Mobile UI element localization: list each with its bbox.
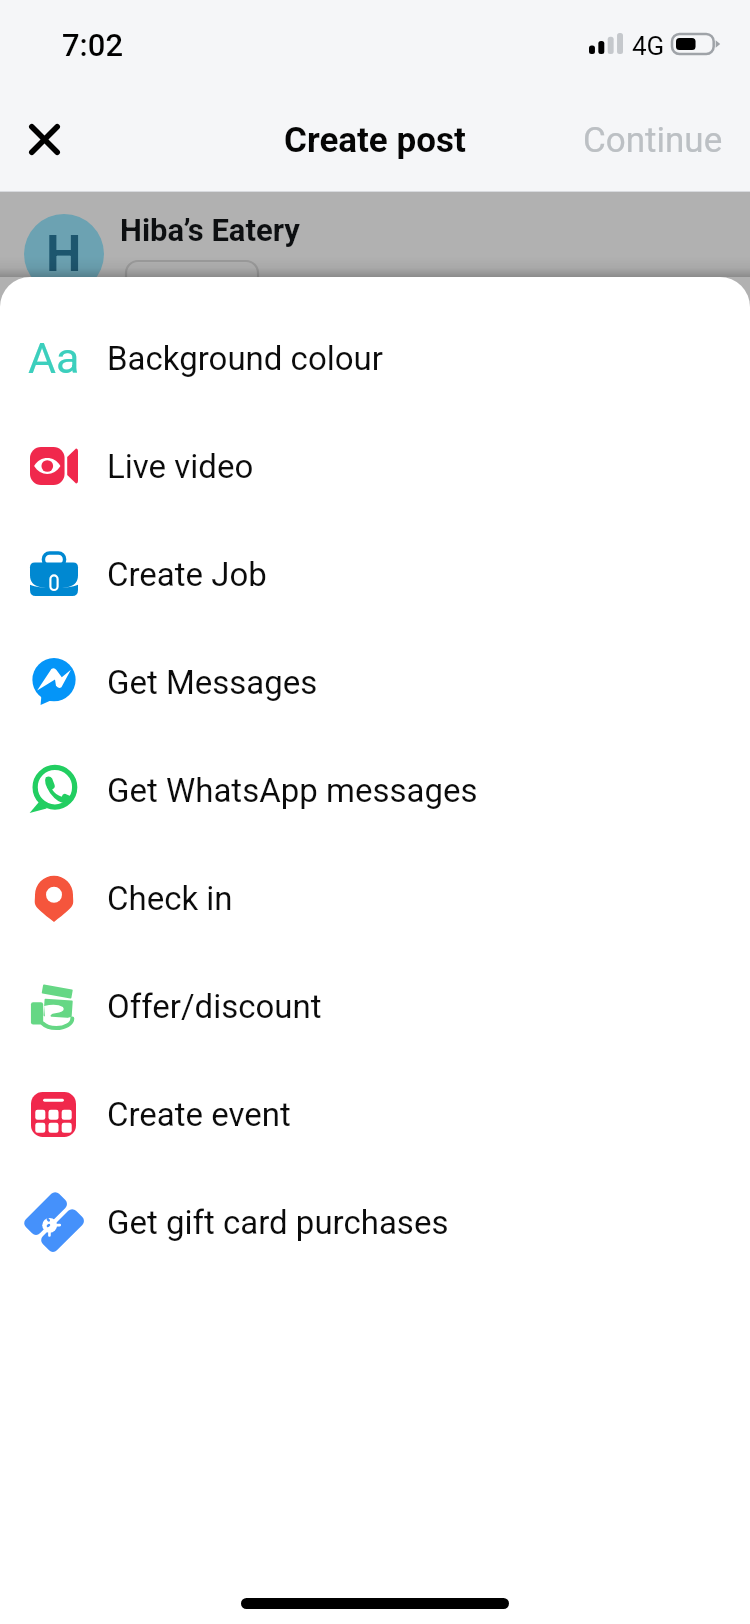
button[interactable]: Get Messages: [0, 628, 750, 736]
staticText: Create post: [284, 120, 466, 161]
staticText: Create event: [107, 1095, 291, 1134]
button[interactable]: Create event: [0, 1060, 750, 1168]
staticText: Create Job: [107, 555, 267, 594]
staticText: Check in: [107, 879, 233, 918]
staticText: Background colour: [107, 339, 383, 378]
staticText: Offer/discount: [107, 987, 322, 1026]
button[interactable]: Aa: [0, 304, 750, 412]
button[interactable]: Create Job: [0, 520, 750, 628]
button[interactable]: Live video: [0, 412, 750, 520]
staticText: H: [46, 225, 82, 284]
button[interactable]: Public: [126, 261, 258, 317]
button[interactable]: Close: [14, 109, 74, 169]
button[interactable]: Check in: [0, 844, 750, 952]
staticText: 7:02: [62, 27, 124, 63]
staticText: 4G: [632, 31, 665, 61]
button[interactable]: Get gift card purchases: [0, 1168, 750, 1276]
button[interactable]: Get WhatsApp messages: [0, 736, 750, 844]
staticText: Get Messages: [107, 663, 318, 702]
button[interactable]: Offer/discount: [0, 952, 750, 1060]
staticText: Get WhatsApp messages: [107, 771, 478, 810]
staticText: Live video: [107, 447, 254, 486]
staticText: Aa: [28, 333, 80, 383]
staticText: Continue: [583, 120, 723, 161]
staticText: Hiba’s Eatery: [120, 212, 300, 248]
staticText: Public: [170, 274, 243, 304]
staticText: Get gift card purchases: [107, 1203, 449, 1242]
button[interactable]: Continue: [563, 109, 743, 172]
